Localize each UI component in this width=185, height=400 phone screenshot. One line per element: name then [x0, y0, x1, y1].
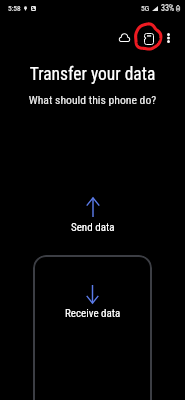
- staticText: 5G: [141, 4, 150, 13]
- button[interactable]: Smart Switch: [134, 24, 163, 53]
- button[interactable]: More options: [156, 25, 180, 51]
- staticText: 33%: [161, 3, 175, 13]
- button[interactable]: Send data: [33, 178, 152, 242]
- staticText: Transfer your data: [0, 64, 185, 85]
- staticText: Receive data: [65, 307, 121, 320]
- staticText: Send data: [71, 221, 115, 234]
- button[interactable]: Cloud backup: [110, 24, 138, 52]
- staticText: 5:58: [8, 4, 21, 13]
- button[interactable]: Receive data: [33, 255, 152, 400]
- staticText: What should this phone do?: [0, 93, 185, 107]
